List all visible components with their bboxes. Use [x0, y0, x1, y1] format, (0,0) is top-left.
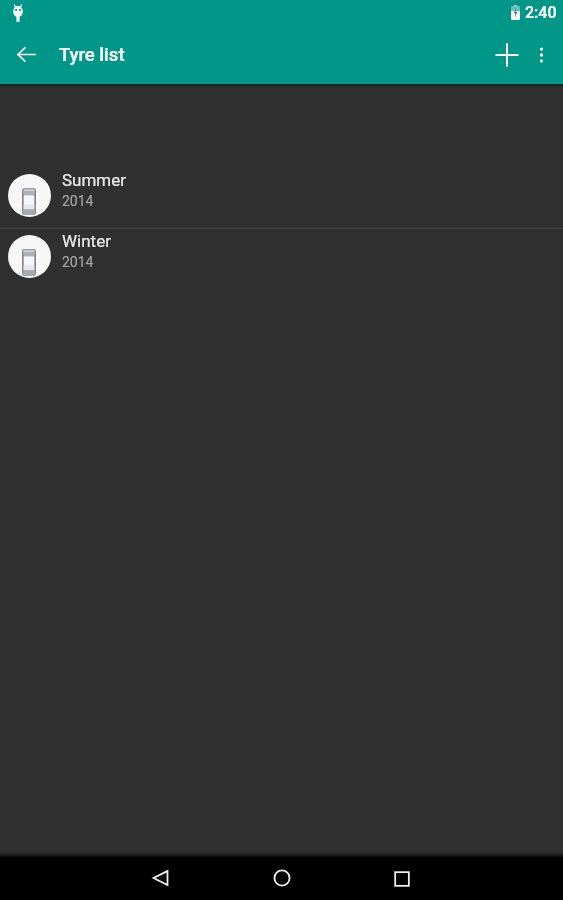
button[interactable]: Back	[139, 856, 183, 899]
button[interactable]: Winter	[0, 229, 563, 289]
button[interactable]: Recents	[380, 857, 424, 900]
staticText: Tyre list	[59, 44, 125, 66]
staticText: 2:40	[525, 3, 557, 22]
staticText: Summer	[62, 170, 127, 190]
button[interactable]: Add	[471, 25, 518, 84]
button[interactable]: Navigate up	[0, 25, 59, 84]
button[interactable]: Home	[260, 856, 304, 899]
button[interactable]: Summer	[0, 168, 563, 228]
staticText: 2014	[62, 254, 94, 270]
button[interactable]: More options	[518, 25, 563, 84]
staticText: Winter	[62, 231, 111, 251]
staticText: 2014	[62, 193, 94, 209]
